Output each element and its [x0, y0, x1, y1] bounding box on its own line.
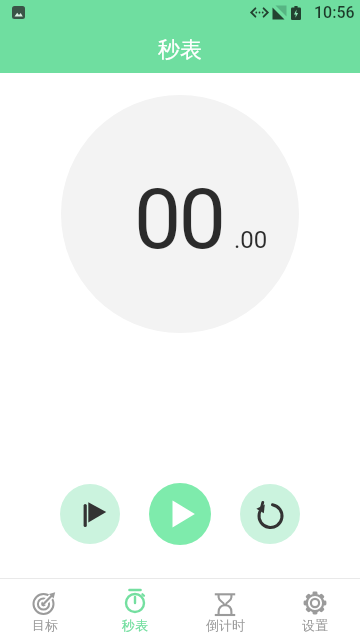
staticText: 秒表	[122, 617, 148, 633]
staticText: 倒计时	[206, 617, 245, 633]
button[interactable]	[60, 484, 120, 544]
staticText: .00	[234, 226, 268, 254]
staticText: 00	[134, 170, 224, 268]
staticText: 目标	[32, 617, 58, 633]
staticText: 10:56	[314, 3, 355, 22]
button[interactable]: 设置	[270, 579, 360, 633]
button[interactable]: 倒计时	[180, 579, 270, 633]
button[interactable]	[149, 483, 211, 545]
button[interactable]: 秒表	[90, 579, 180, 633]
staticText: 设置	[302, 617, 328, 633]
button[interactable]	[240, 484, 300, 544]
staticText: 秒表	[158, 36, 202, 64]
button[interactable]: 目标	[0, 579, 90, 633]
